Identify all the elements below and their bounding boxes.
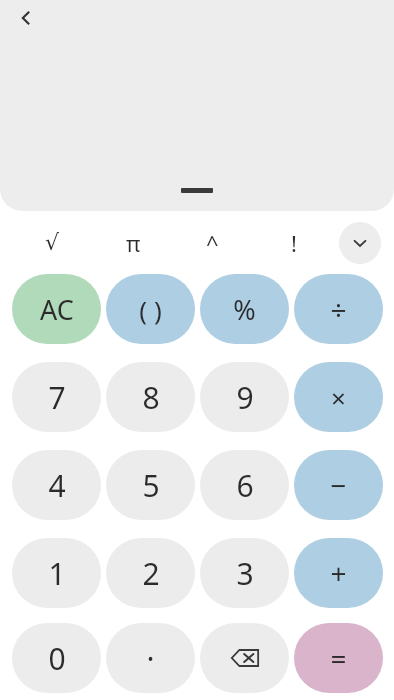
staticText: ( ) bbox=[139, 292, 162, 327]
staticText: 7 bbox=[48, 377, 66, 418]
staticText: + bbox=[330, 554, 347, 592]
button[interactable]: % bbox=[200, 274, 289, 344]
staticText: % bbox=[233, 291, 256, 328]
button[interactable]: Backspace bbox=[200, 623, 289, 693]
staticText: ^ bbox=[206, 228, 219, 258]
staticText: π bbox=[126, 228, 141, 258]
button[interactable]: 6 bbox=[200, 450, 289, 520]
staticText: AC bbox=[40, 291, 74, 328]
button[interactable]: 4 bbox=[12, 450, 101, 520]
button[interactable]: 3 bbox=[200, 538, 289, 608]
button[interactable]: ( ) bbox=[106, 274, 195, 344]
button[interactable]: √ bbox=[26, 223, 78, 263]
button[interactable]: 0 bbox=[12, 623, 101, 693]
staticText: 5 bbox=[142, 465, 160, 506]
staticText: × bbox=[331, 380, 346, 415]
button[interactable]: 2 bbox=[106, 538, 195, 608]
button[interactable]: π bbox=[107, 223, 159, 263]
button[interactable]: 1 bbox=[12, 538, 101, 608]
staticText: ÷ bbox=[330, 290, 347, 328]
staticText: 4 bbox=[48, 465, 66, 506]
button[interactable]: = bbox=[294, 623, 383, 693]
staticText: 2 bbox=[142, 553, 160, 594]
staticText: 8 bbox=[142, 377, 160, 418]
button[interactable]: Show more functions bbox=[339, 222, 381, 264]
staticText: 6 bbox=[236, 465, 254, 506]
staticText: · bbox=[146, 638, 155, 679]
button[interactable]: 8 bbox=[106, 362, 195, 432]
staticText: √ bbox=[45, 230, 60, 256]
button[interactable]: × bbox=[294, 362, 383, 432]
button[interactable]: AC bbox=[12, 274, 101, 344]
staticText: 9 bbox=[236, 377, 254, 418]
button[interactable]: − bbox=[294, 450, 383, 520]
button[interactable]: + bbox=[294, 538, 383, 608]
button[interactable]: ÷ bbox=[294, 274, 383, 344]
button[interactable]: Back bbox=[8, 2, 44, 34]
button[interactable]: 9 bbox=[200, 362, 289, 432]
staticText: − bbox=[330, 466, 347, 504]
staticText: ! bbox=[291, 228, 297, 258]
staticText: 0 bbox=[48, 638, 66, 679]
button[interactable]: 7 bbox=[12, 362, 101, 432]
staticText: = bbox=[330, 639, 347, 677]
staticText: 1 bbox=[48, 553, 66, 594]
button[interactable]: · bbox=[106, 623, 195, 693]
button[interactable]: ^ bbox=[186, 223, 238, 263]
staticText: 3 bbox=[236, 553, 254, 594]
button[interactable]: ! bbox=[268, 223, 320, 263]
button[interactable]: 5 bbox=[106, 450, 195, 520]
